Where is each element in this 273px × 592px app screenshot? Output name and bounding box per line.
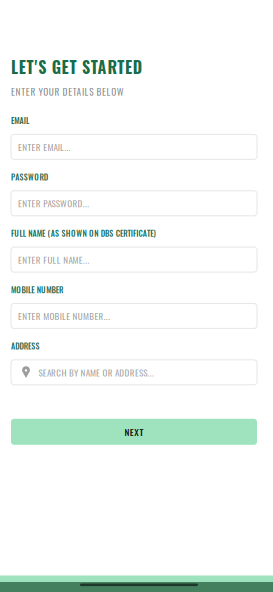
- button[interactable]: SEARCH BY NAME OR ADDRESS...: [11, 360, 257, 385]
- button[interactable]: ENTER MOBILE NUMBER...: [11, 303, 257, 328]
- staticText: NEXT: [125, 425, 143, 438]
- button[interactable]: NEXT: [11, 419, 257, 445]
- staticText: ENTER YOUR DETAILS BELOW: [11, 85, 124, 98]
- staticText: EMAIL: [11, 114, 29, 126]
- staticText: ADDRESS: [11, 340, 39, 352]
- button[interactable]: ENTER FULL NAME...: [11, 247, 257, 272]
- staticText: PASSWORD: [11, 171, 48, 183]
- button[interactable]: ENTER EMAIL...: [11, 134, 257, 159]
- staticText: ENTER FULL NAME...: [18, 253, 89, 266]
- staticText: MOBILE NUMBER: [11, 284, 63, 295]
- staticText: FULL NAME (AS SHOWN ON DBS CERTIFICATE): [11, 227, 155, 239]
- staticText: ENTER EMAIL...: [18, 140, 71, 154]
- staticText: LET'S GET STARTED: [11, 55, 142, 79]
- staticText: SEARCH BY NAME OR ADDRESS...: [38, 366, 154, 379]
- button[interactable]: ENTER PASSWORD...: [11, 191, 257, 216]
- staticText: ENTER PASSWORD...: [18, 196, 89, 210]
- staticText: ENTER MOBILE NUMBER...: [18, 309, 110, 323]
